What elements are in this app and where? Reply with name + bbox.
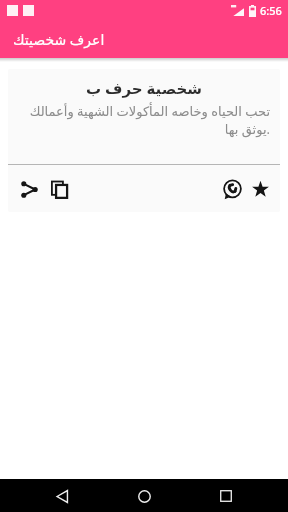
button[interactable]: Recent apps xyxy=(211,481,241,511)
button[interactable]: Copy xyxy=(44,174,74,204)
button[interactable]: Share xyxy=(14,174,44,204)
staticText: 6:56 xyxy=(260,3,282,18)
staticText: تحب الحياه وخاصه المأكولات الشهية وأعمال… xyxy=(18,102,270,138)
button[interactable]: Favorite xyxy=(247,176,273,202)
button[interactable]: Back xyxy=(47,481,77,511)
button[interactable]: Share on WhatsApp xyxy=(217,174,247,204)
staticText: اعرف شخصيتك xyxy=(13,30,105,49)
button[interactable]: Home xyxy=(129,481,159,511)
staticText: شخصية حرف ب xyxy=(18,78,270,98)
